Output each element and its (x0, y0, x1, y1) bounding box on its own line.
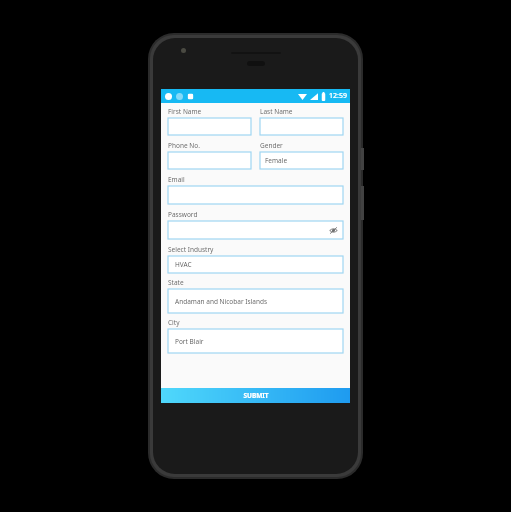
button[interactable]: Port Blair (168, 329, 343, 353)
staticText: 12:59 (329, 91, 347, 101)
button[interactable]: HVAC (168, 256, 343, 273)
button[interactable] (168, 118, 251, 135)
staticText: First Name (168, 107, 202, 116)
staticText: Email (168, 175, 185, 184)
staticText: City (168, 318, 180, 327)
staticText: Female (265, 156, 288, 165)
staticText: Phone No. (168, 141, 200, 150)
staticText: HVAC (175, 260, 192, 269)
staticText: Password (168, 210, 198, 219)
button[interactable]: Toggle password visibility (329, 226, 338, 235)
staticText: State (168, 278, 184, 287)
staticText: Select Industry (168, 245, 214, 254)
button[interactable]: Andaman and Nicobar Islands (168, 289, 343, 313)
staticText: SUBMIT (243, 391, 269, 400)
button[interactable]: SUBMIT (161, 388, 350, 403)
staticText: Gender (260, 141, 283, 150)
button[interactable] (168, 152, 251, 169)
button[interactable] (260, 118, 343, 135)
staticText: Last Name (260, 107, 293, 116)
staticText: Port Blair (175, 337, 204, 346)
button[interactable]: Female (260, 152, 343, 169)
button[interactable]: Toggle password visibility (168, 221, 343, 239)
button[interactable] (168, 186, 343, 204)
staticText: Andaman and Nicobar Islands (175, 297, 268, 306)
